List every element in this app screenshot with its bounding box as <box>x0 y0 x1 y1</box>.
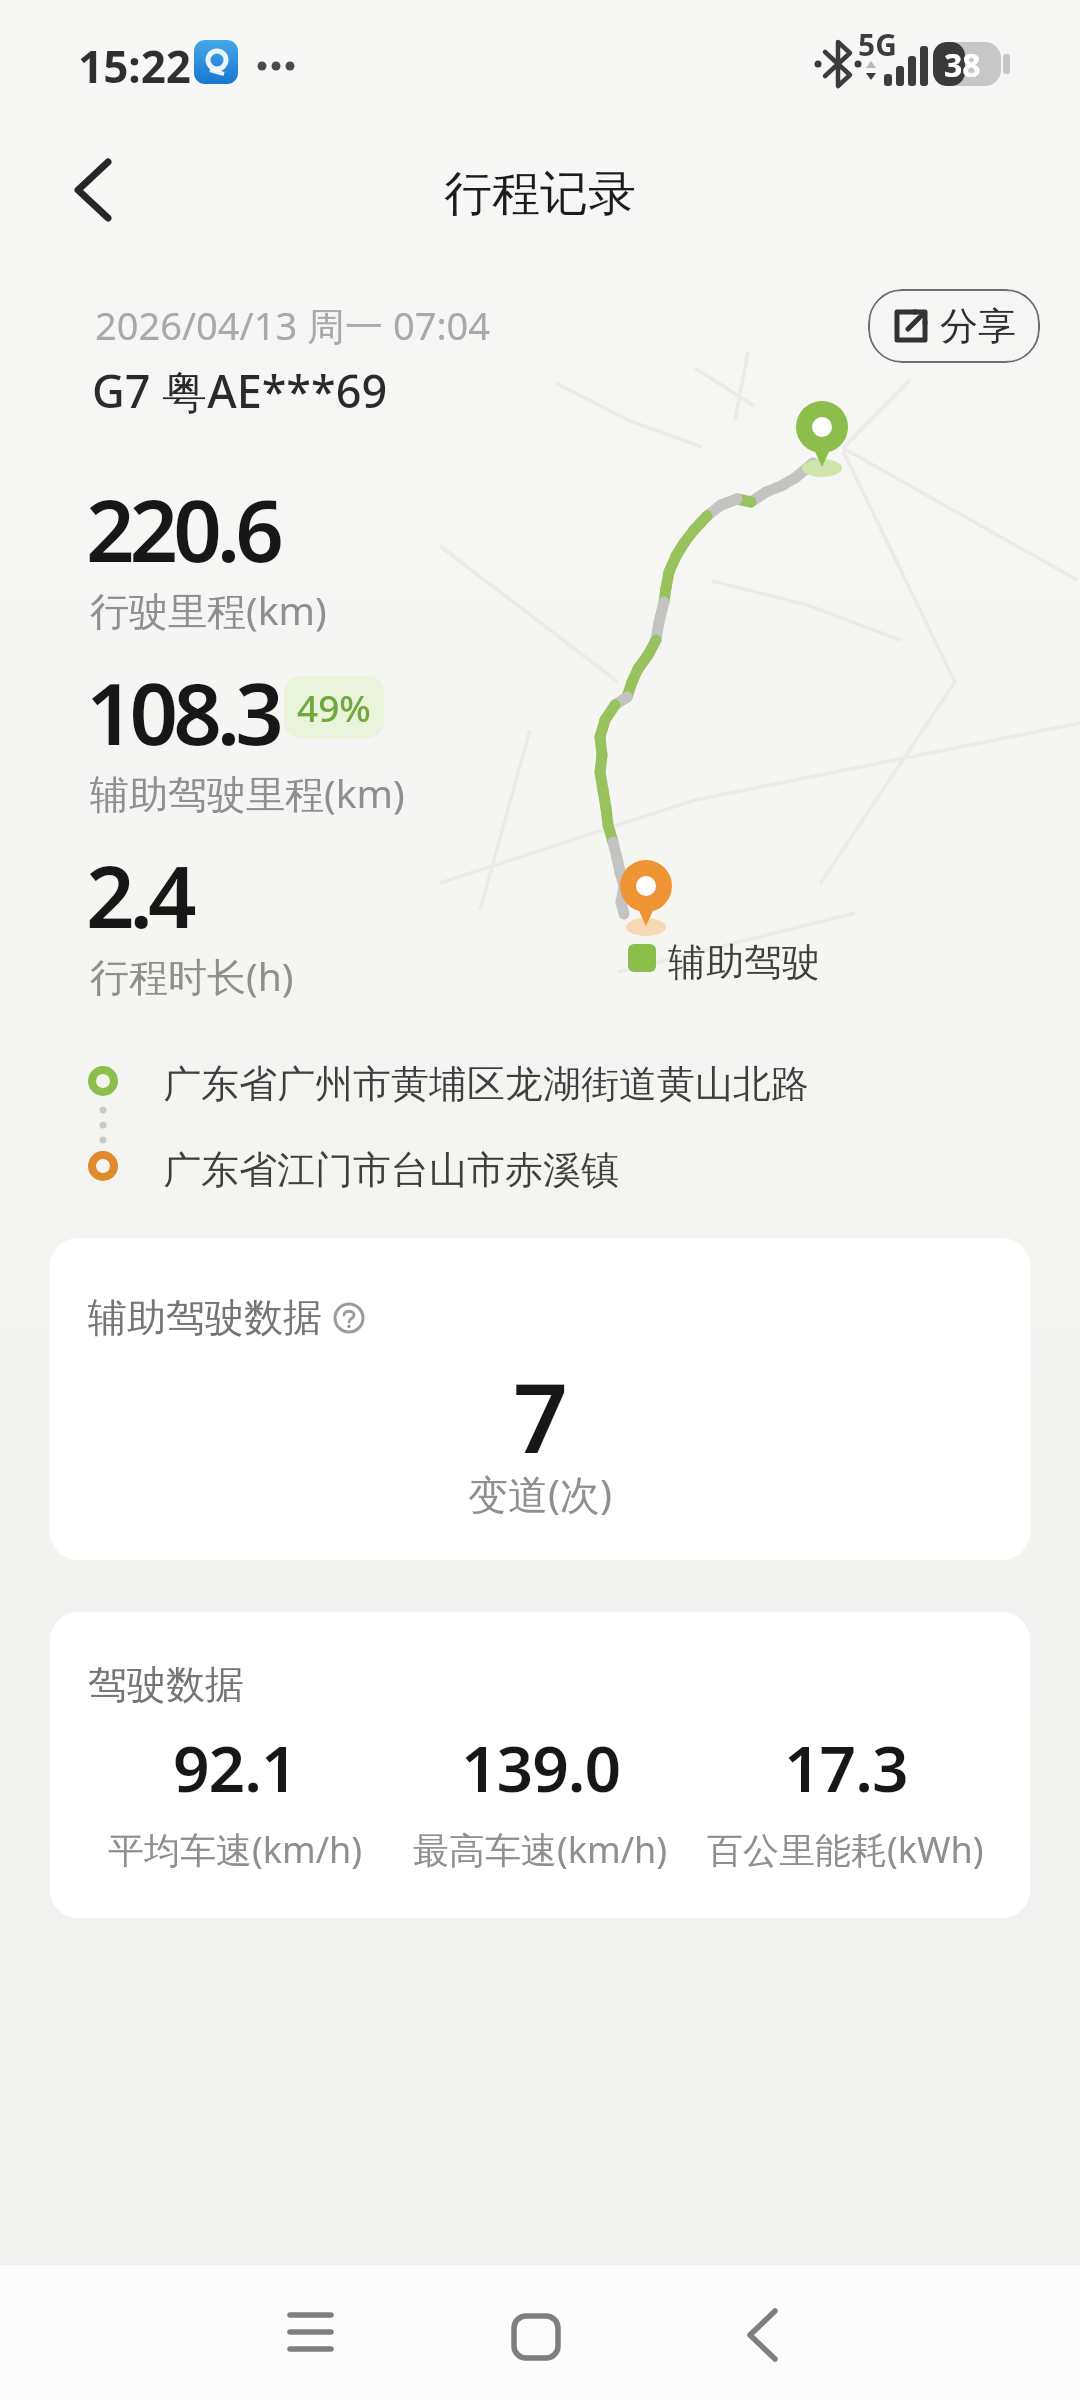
staticText: 辅助驾驶数据 <box>88 1293 322 1342</box>
staticText: 分享 <box>940 302 1016 350</box>
staticText: 2.4 <box>86 837 192 953</box>
staticText: 变道(次) <box>468 1466 612 1521</box>
staticText: 广东省江门市台山市赤溪镇 <box>163 1146 619 1194</box>
button[interactable] <box>702 2270 822 2390</box>
staticText: 辅助驾驶里程(km) <box>90 766 405 819</box>
staticText: 15:22 <box>78 36 192 96</box>
button[interactable]: 分享 <box>868 289 1040 363</box>
staticText: 最高车速(km/h) <box>413 1825 668 1874</box>
staticText: 行驶里程(km) <box>90 583 327 636</box>
staticText: 行程时长(h) <box>90 949 294 1002</box>
staticText: 92.1 <box>173 1724 297 1811</box>
staticText: 百公里能耗(kWh) <box>707 1825 984 1874</box>
staticText: 38 <box>944 43 981 87</box>
staticText: 17.3 <box>784 1724 908 1811</box>
button[interactable] <box>50 150 140 240</box>
staticText: 5G <box>858 24 897 65</box>
button[interactable] <box>250 2270 370 2390</box>
staticText: 平均车速(km/h) <box>108 1825 363 1874</box>
staticText: 驾驶数据 <box>88 1660 244 1709</box>
staticText: 广东省广州市黄埔区龙湖街道黄山北路 <box>163 1060 809 1108</box>
staticText: 139.0 <box>461 1724 621 1811</box>
staticText: 行程记录 <box>444 164 636 224</box>
button[interactable]: 驾驶数据 <box>50 1612 1030 1918</box>
staticText: 220.6 <box>86 471 279 587</box>
staticText: 108.3 <box>86 654 279 770</box>
staticText: 49% <box>297 682 371 732</box>
staticText: G7 粤AE***69 <box>92 360 388 421</box>
staticText: 2026/04/13 周一 07:04 <box>95 299 491 351</box>
staticText: 7 <box>513 1350 568 1481</box>
staticText: 辅助驾驶 <box>668 938 820 986</box>
button[interactable]: 辅助驾驶数据 <box>50 1238 1030 1560</box>
button[interactable] <box>476 2270 596 2390</box>
